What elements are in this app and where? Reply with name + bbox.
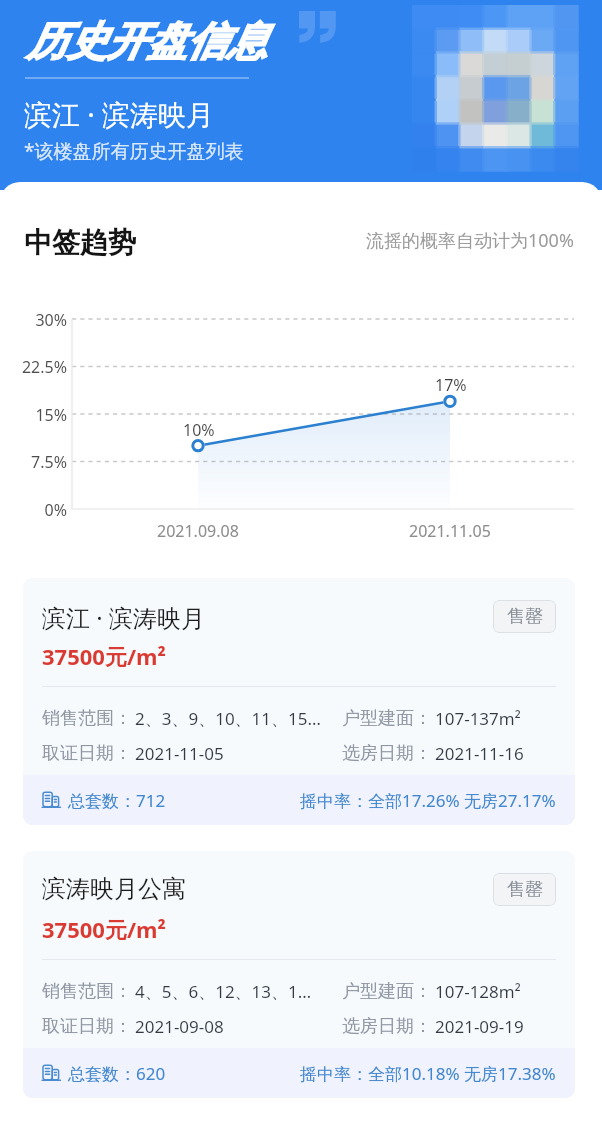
staticText: 取证日期： <box>42 1015 132 1038</box>
staticText: 流摇的概率自动计为100% <box>366 228 574 253</box>
staticText: 10% <box>183 419 215 441</box>
staticText: 22.5% <box>0 356 67 378</box>
staticText: 37500元/m² <box>42 641 166 671</box>
staticText: 摇中率：全部17.26% 无房27.17% <box>300 789 556 812</box>
staticText: 0% <box>0 499 67 521</box>
staticText: 30% <box>0 309 67 331</box>
staticText: 4、5、6、12、13、1… <box>135 980 312 1003</box>
staticText: 2021-11-16 <box>435 742 524 765</box>
staticText: *该楼盘所有历史开盘列表 <box>24 138 244 164</box>
button[interactable]: 售罄 <box>493 600 556 633</box>
staticText: 17% <box>435 374 467 396</box>
button[interactable]: 滨江 · 滨涛映月 <box>23 578 575 825</box>
staticText: 滨涛映月公寓 <box>42 874 186 904</box>
staticText: 37500元/m² <box>42 914 166 944</box>
staticText: 中签趋势 <box>24 225 136 260</box>
staticText: 户型建面： <box>342 980 432 1003</box>
staticText: 总套数：620 <box>68 1062 166 1085</box>
staticText: 售罄 <box>507 878 543 901</box>
staticText: 7.5% <box>0 451 67 473</box>
staticText: 总套数：712 <box>68 789 166 812</box>
staticText: 2021.11.05 <box>409 520 491 542</box>
staticText: 售罄 <box>507 605 543 628</box>
staticText: 销售范围： <box>42 707 132 730</box>
staticText: 107-128m² <box>435 980 521 1003</box>
button[interactable]: 售罄 <box>493 873 556 906</box>
staticText: 2021-09-08 <box>135 1015 224 1038</box>
staticText: 选房日期： <box>342 1015 432 1038</box>
staticText: 2021-09-19 <box>435 1015 524 1038</box>
staticText: 户型建面： <box>342 707 432 730</box>
staticText: 选房日期： <box>342 742 432 765</box>
staticText: 历史开盘信息 <box>27 16 267 66</box>
staticText: 销售范围： <box>42 980 132 1003</box>
staticText: 2、3、9、10、11、15… <box>135 707 321 730</box>
staticText: 取证日期： <box>42 742 132 765</box>
staticText: 107-137m² <box>435 707 521 730</box>
staticText: 15% <box>0 404 67 426</box>
staticText: 2021.09.08 <box>157 520 239 542</box>
staticText: 2021-11-05 <box>135 742 224 765</box>
staticText: 滨江 · 滨涛映月 <box>42 601 205 634</box>
staticText: 滨江 · 滨涛映月 <box>24 95 215 133</box>
staticText: 摇中率：全部10.18% 无房17.38% <box>300 1062 556 1085</box>
button[interactable]: 滨涛映月公寓 <box>23 851 575 1098</box>
